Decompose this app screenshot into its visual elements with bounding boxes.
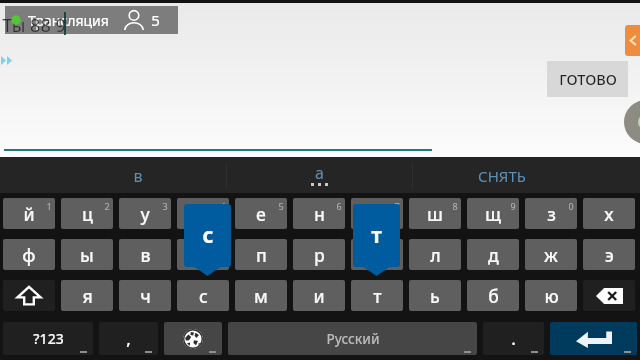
staticText: 3 [162,200,168,212]
staticText: ц [82,202,93,226]
button[interactable]: Enter [550,322,637,355]
button[interactable]: ы [61,239,113,270]
staticText: 6 [336,200,342,212]
button[interactable]: н [293,198,345,229]
button[interactable]: л [409,239,461,270]
staticText: 5 [151,10,160,30]
staticText: СНЯТЬ [478,166,526,186]
button[interactable]: Shift [3,280,55,311]
staticText: 8 [452,200,458,212]
button[interactable]: ш [409,198,461,229]
button[interactable]: з [525,198,577,229]
staticText: ф [22,243,36,267]
button[interactable]: о [351,239,403,270]
button[interactable]: в [119,239,171,270]
staticText: 9 [510,200,516,212]
button[interactable]: щ [467,198,519,229]
button[interactable]: ф [3,239,55,270]
button[interactable]: Русский [228,322,477,355]
button[interactable]: с [177,280,229,311]
button[interactable]: а [227,157,412,193]
staticText: к [198,202,208,226]
staticText: н [314,202,325,226]
button[interactable]: ч [119,280,171,311]
staticText: в [133,165,143,187]
button[interactable]: Delete [583,280,635,311]
button[interactable]: ж [525,239,577,270]
staticText: Ты 88 9 [2,13,66,38]
button[interactable]: , [99,322,158,355]
staticText: я [82,284,93,308]
button[interactable]: . [483,322,544,355]
button[interactable]: Change language [164,322,222,355]
staticText: т [371,221,382,250]
staticText: е [256,202,266,226]
button[interactable]: э [583,239,635,270]
staticText: 5 [278,200,284,212]
staticText: б [488,284,499,308]
button[interactable]: я [61,280,113,311]
staticText: Трансляция [28,11,109,30]
button[interactable]: ю [525,280,577,311]
staticText: с [202,221,214,250]
button[interactable]: и [293,280,345,311]
button[interactable]: е [235,198,287,229]
staticText: ю [544,284,559,308]
staticText: х [604,202,614,226]
staticText: ГОТОВО [559,69,617,89]
staticText: ?123 [33,329,64,348]
button[interactable]: Expand [0,53,16,68]
staticText: в [140,243,151,267]
button[interactable]: м [235,280,287,311]
button[interactable]: й [3,198,55,229]
button[interactable]: Трансляция [5,6,178,34]
staticText: щ [485,202,501,226]
staticText: ж [544,243,558,267]
button[interactable]: ц [61,198,113,229]
staticText: м [254,284,268,308]
button[interactable]: у [119,198,171,229]
button[interactable]: х [583,198,635,229]
staticText: ш [427,202,443,226]
button[interactable]: ГОТОВО [547,61,628,97]
staticText: д [488,243,499,267]
button[interactable]: т [351,280,403,311]
button[interactable]: ?123 [3,322,93,355]
staticText: л [430,243,441,267]
button[interactable]: д [467,239,519,270]
staticText: г [373,202,381,226]
button[interactable]: р [293,239,345,270]
staticText: 0 [568,200,574,212]
button[interactable]: г [351,198,403,229]
staticText: ь [430,284,440,308]
staticText: п [256,243,267,267]
staticText: э [605,243,614,267]
staticText: . [511,327,516,350]
button[interactable]: в [0,157,226,193]
staticText: а [315,162,324,184]
staticText: Русский [326,330,380,348]
button[interactable]: а [177,239,229,270]
staticText: с [199,284,208,308]
staticText: ы [80,243,94,267]
button[interactable]: Collapse panel [625,25,640,56]
staticText: и [313,284,325,308]
button[interactable]: п [235,239,287,270]
staticText: 2 [104,200,110,212]
staticText: т [373,284,382,308]
staticText: , [126,327,131,350]
staticText: з [547,202,556,226]
staticText: р [314,243,325,267]
button[interactable]: б [467,280,519,311]
staticText: й [23,202,35,226]
button[interactable]: СНЯТЬ [413,157,640,193]
staticText: 7 [394,200,400,212]
button[interactable]: к [177,198,229,229]
button[interactable]: ь [409,280,461,311]
staticText: ч [140,284,151,308]
staticText: 4 [220,200,226,212]
staticText: у [140,202,150,226]
staticText: 1 [46,200,52,212]
